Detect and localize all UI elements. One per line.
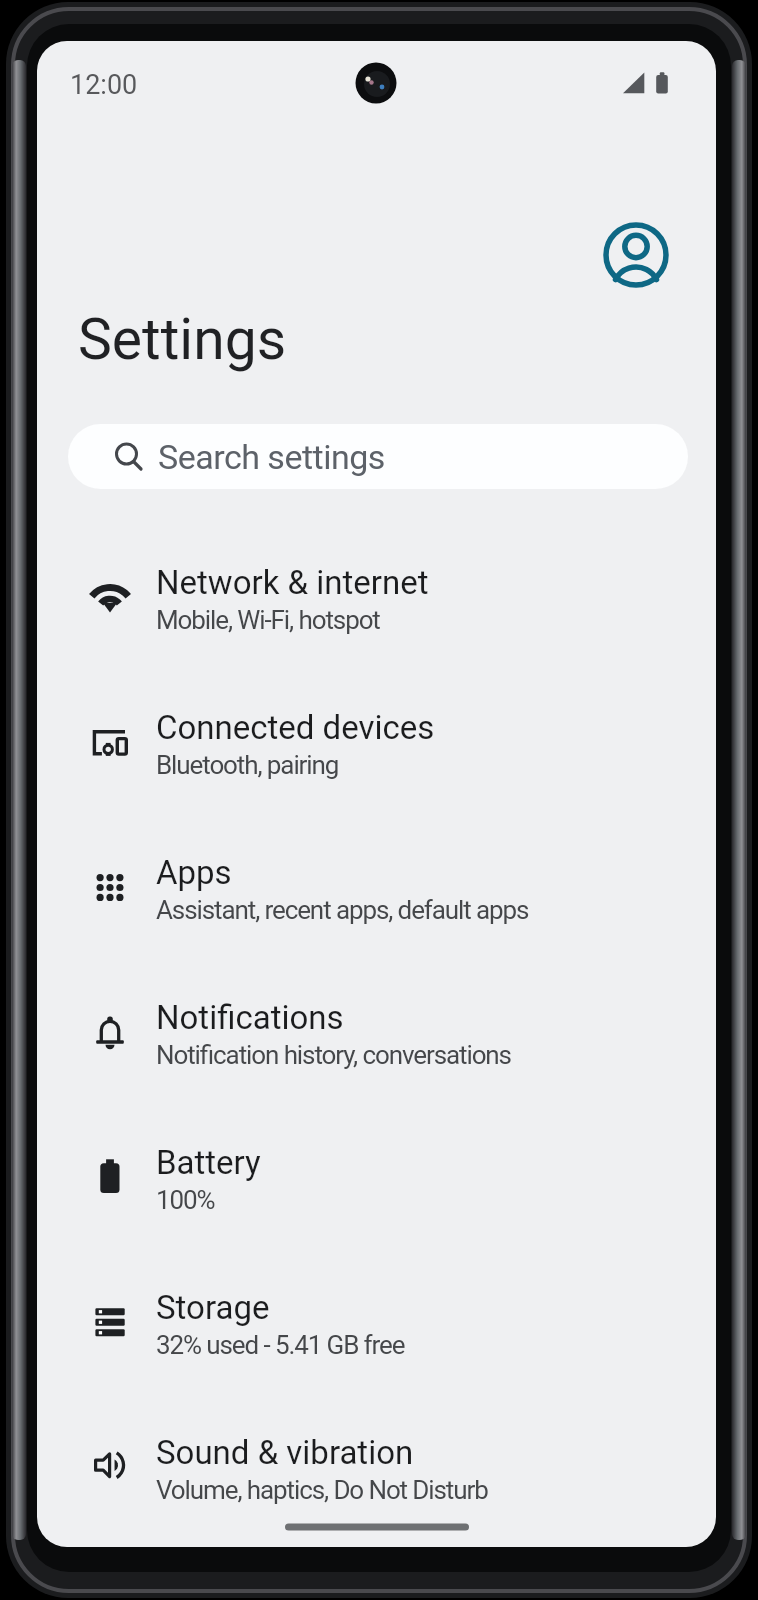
staticText: Notifications xyxy=(156,998,344,1037)
button[interactable] xyxy=(37,686,716,831)
staticText: 12:00 xyxy=(70,69,138,101)
button[interactable] xyxy=(37,976,716,1121)
button[interactable] xyxy=(37,1266,716,1411)
button[interactable] xyxy=(37,1121,716,1266)
staticText: Notification history, conversations xyxy=(156,1040,511,1070)
staticText: Settings xyxy=(78,306,287,373)
staticText: Volume, haptics, Do Not Disturb xyxy=(156,1475,488,1505)
button[interactable] xyxy=(37,831,716,976)
button[interactable] xyxy=(37,1411,716,1556)
staticText: 100% xyxy=(156,1185,215,1215)
staticText: 32% used - 5.41 GB free xyxy=(156,1330,405,1360)
staticText: Battery xyxy=(156,1143,261,1182)
staticText: Mobile, Wi-Fi, hotspot xyxy=(156,605,380,635)
button[interactable] xyxy=(68,424,688,489)
staticText: Network & internet xyxy=(156,563,429,602)
staticText: Assistant, recent apps, default apps xyxy=(156,895,529,925)
staticText: Storage xyxy=(156,1288,270,1327)
staticText: Search settings xyxy=(158,437,385,477)
staticText: Apps xyxy=(156,853,232,892)
staticText: Bluetooth, pairing xyxy=(156,750,339,780)
staticText: Connected devices xyxy=(156,708,435,747)
button[interactable] xyxy=(602,221,670,289)
staticText: Sound & vibration xyxy=(156,1433,414,1472)
button[interactable] xyxy=(37,541,716,686)
